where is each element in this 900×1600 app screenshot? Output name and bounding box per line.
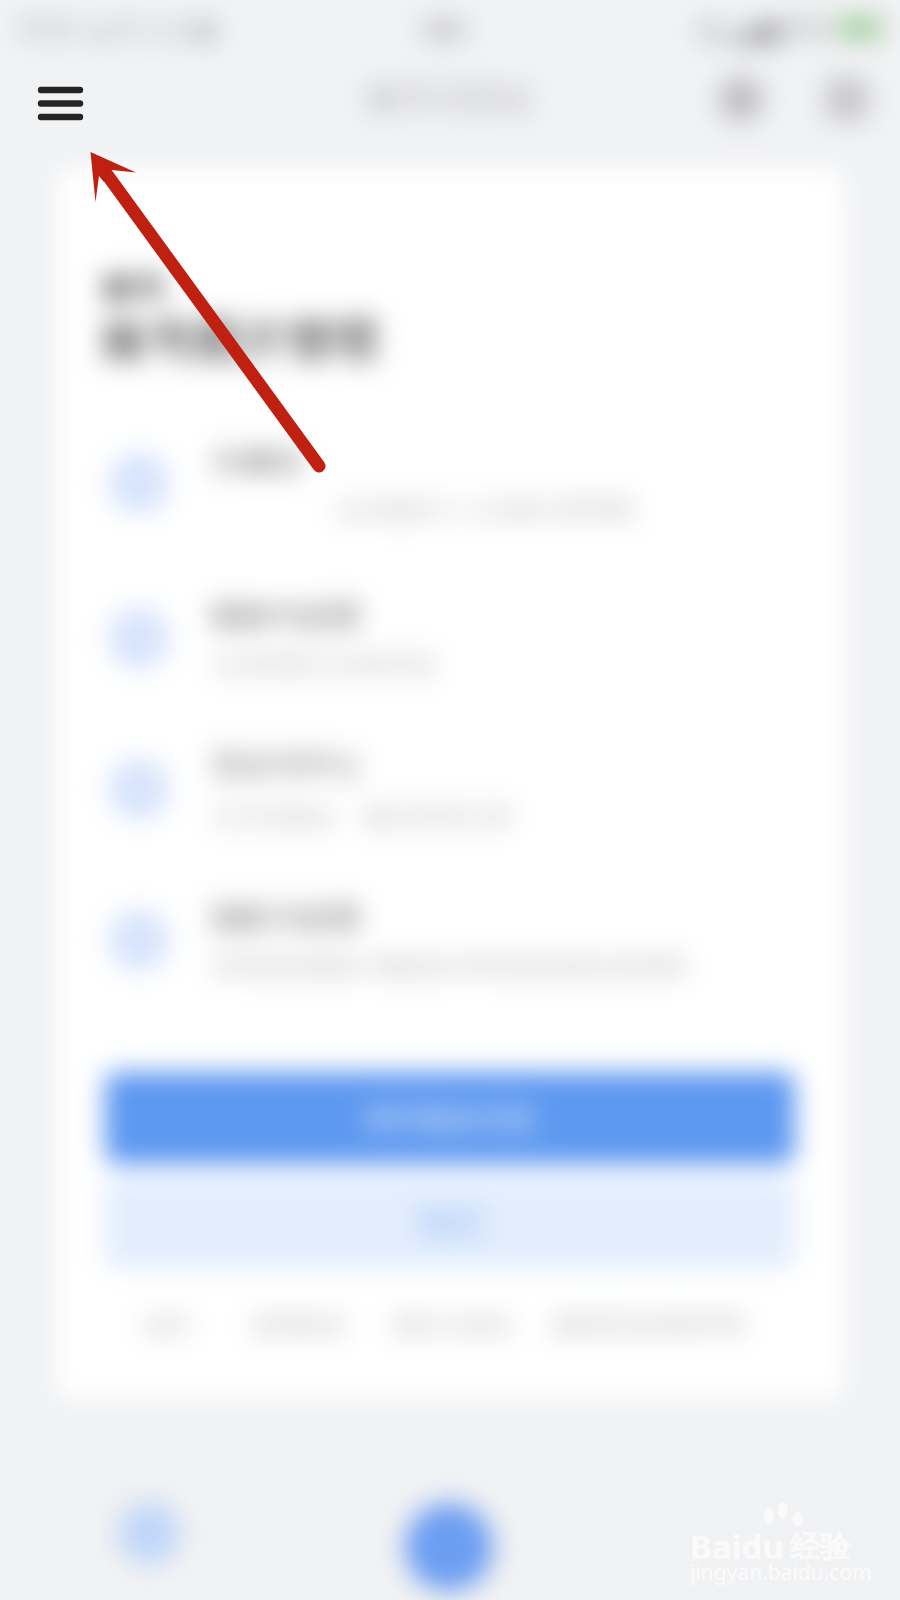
button[interactable]: Menu [29,73,91,135]
staticText: 10:24 ☁ ✉ ♫ ◎ ▣ [16,12,216,43]
staticText: Baidu [690,1524,784,1569]
button[interactable]: More options [816,68,878,130]
staticText: 账号图片管理 [102,313,378,371]
button[interactable]: 保存修改信息 [105,1072,795,1164]
staticText: 保存修改信息 [363,1100,537,1137]
staticText: 经验 [790,1528,850,1566]
staticText: jingyan.baidu.com [690,1558,872,1587]
button[interactable]: Add [405,1503,493,1591]
button[interactable]: 隐私与设置 [55,865,845,1015]
staticText: 已开启验证 最近登录记录 [212,798,514,832]
button[interactable]: 安全与中心 [55,714,845,864]
staticText: 头像设 [212,442,302,480]
staticText: 安全与中心 [212,746,362,784]
button[interactable]: Home [118,1502,180,1564]
staticText: ●● [423,14,465,42]
staticText: 昵称与设置 [212,597,362,635]
button[interactable]: Search [710,68,772,130]
staticText: 账号与安全 [368,78,533,120]
staticText: 取消 [421,1205,479,1242]
button[interactable]: 取消 [105,1178,795,1268]
staticText: ▤ ▂▄▆ 86% [699,12,838,43]
staticText: 隐私与设置 [212,899,362,937]
button[interactable]: Menu [20,68,82,130]
button[interactable]: 昵称与设置 [55,563,845,713]
button[interactable]: 头像设 [55,408,845,558]
staticText: 账号 [103,269,165,308]
